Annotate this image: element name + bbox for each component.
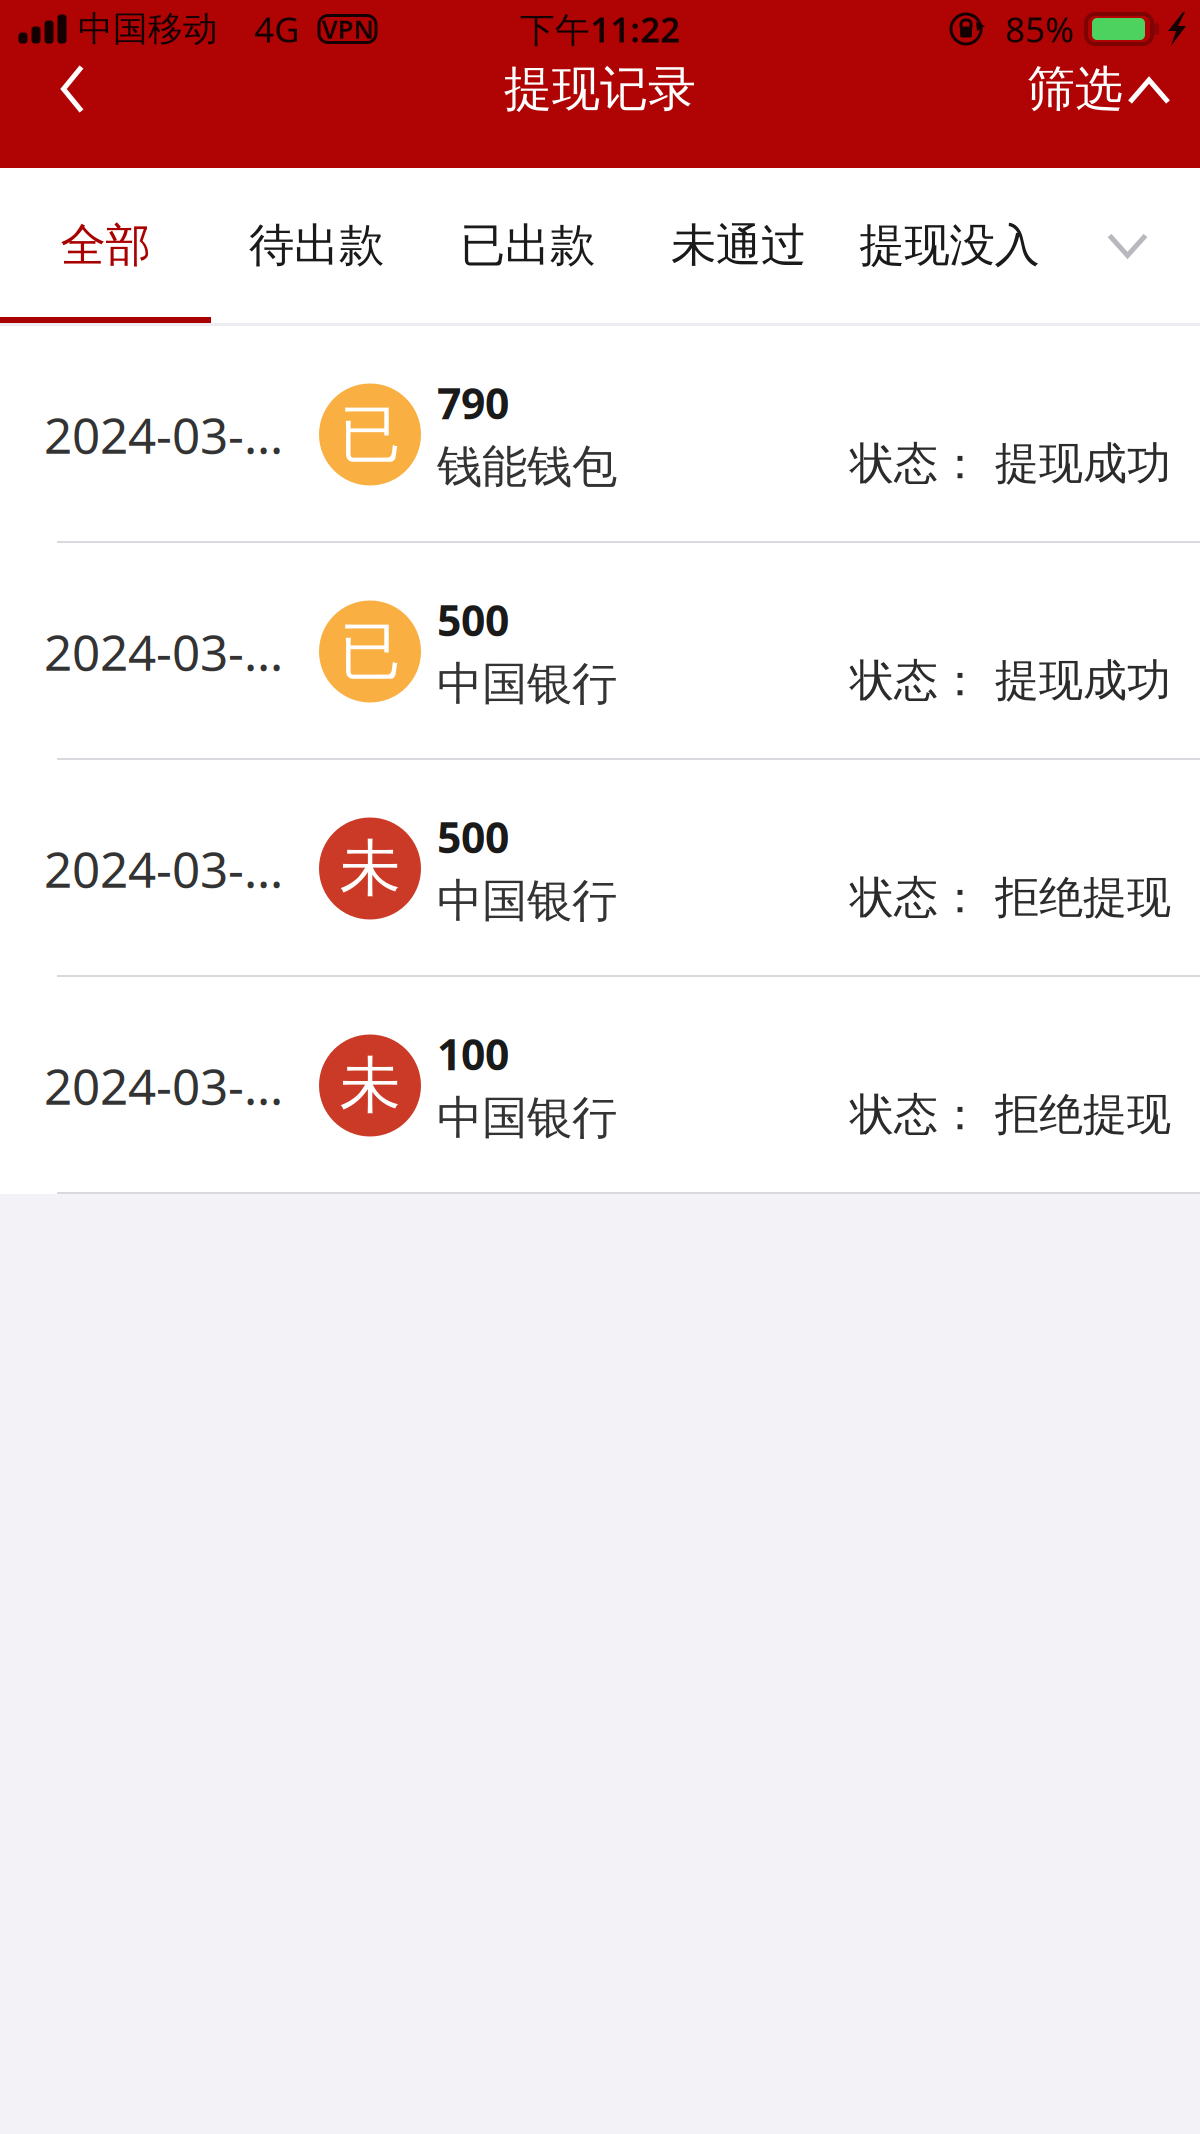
staticText: 筛选 <box>1027 59 1123 118</box>
staticText: 状态： 提现成功 <box>850 653 1171 707</box>
staticText: 提现记录 <box>504 59 696 118</box>
staticText: 中国银行 <box>437 1090 617 1146</box>
button[interactable]: 提现没入 <box>844 168 1055 323</box>
staticText: 已 <box>339 614 400 689</box>
staticText: 85% <box>1005 6 1074 52</box>
button[interactable]: 全部 <box>0 168 211 323</box>
button[interactable]: 未通过 <box>633 168 844 323</box>
staticText: 钱能钱包 <box>437 439 617 495</box>
button[interactable]: 2024-03-... <box>0 543 1200 760</box>
button[interactable]: 待出款 <box>211 168 422 323</box>
button[interactable]: 2024-03-... <box>0 760 1200 977</box>
staticText: 状态： 拒绝提现 <box>850 870 1171 924</box>
staticText: VPN <box>321 12 373 46</box>
staticText: 提现没入 <box>859 218 1039 273</box>
staticText: 下午11:22 <box>520 6 680 52</box>
staticText: 未 <box>339 1048 400 1123</box>
staticText: 500 <box>437 808 509 865</box>
staticText: 100 <box>437 1025 509 1082</box>
staticText: 待出款 <box>249 218 384 273</box>
button[interactable]: 筛选 <box>1001 58 1200 120</box>
staticText: 2024-03-... <box>44 1053 283 1118</box>
button[interactable]: 返回 <box>0 58 145 120</box>
staticText: 中国银行 <box>437 656 617 712</box>
staticText: 状态： 拒绝提现 <box>850 1087 1171 1141</box>
button[interactable]: 2024-03-... <box>0 326 1200 543</box>
staticText: 中国移动 <box>78 8 218 50</box>
staticText: 2024-03-... <box>44 402 283 467</box>
staticText: 790 <box>437 374 509 431</box>
staticText: 2024-03-... <box>44 836 283 901</box>
button[interactable]: 已出款 <box>422 168 633 323</box>
staticText: 全部 <box>60 218 150 273</box>
staticText: 状态： 提现成功 <box>850 436 1171 490</box>
staticText: 中国银行 <box>437 873 617 929</box>
staticText: 4G <box>254 6 299 52</box>
staticText: 2024-03-... <box>44 619 283 684</box>
staticText: 500 <box>437 591 509 648</box>
staticText: 已 <box>339 397 400 472</box>
button[interactable]: 2024-03-... <box>0 977 1200 1194</box>
staticText: 未 <box>339 831 400 906</box>
staticText: 已出款 <box>460 218 595 273</box>
button[interactable]: 展开更多筛选 <box>1055 168 1200 323</box>
staticText: 未通过 <box>671 218 806 273</box>
